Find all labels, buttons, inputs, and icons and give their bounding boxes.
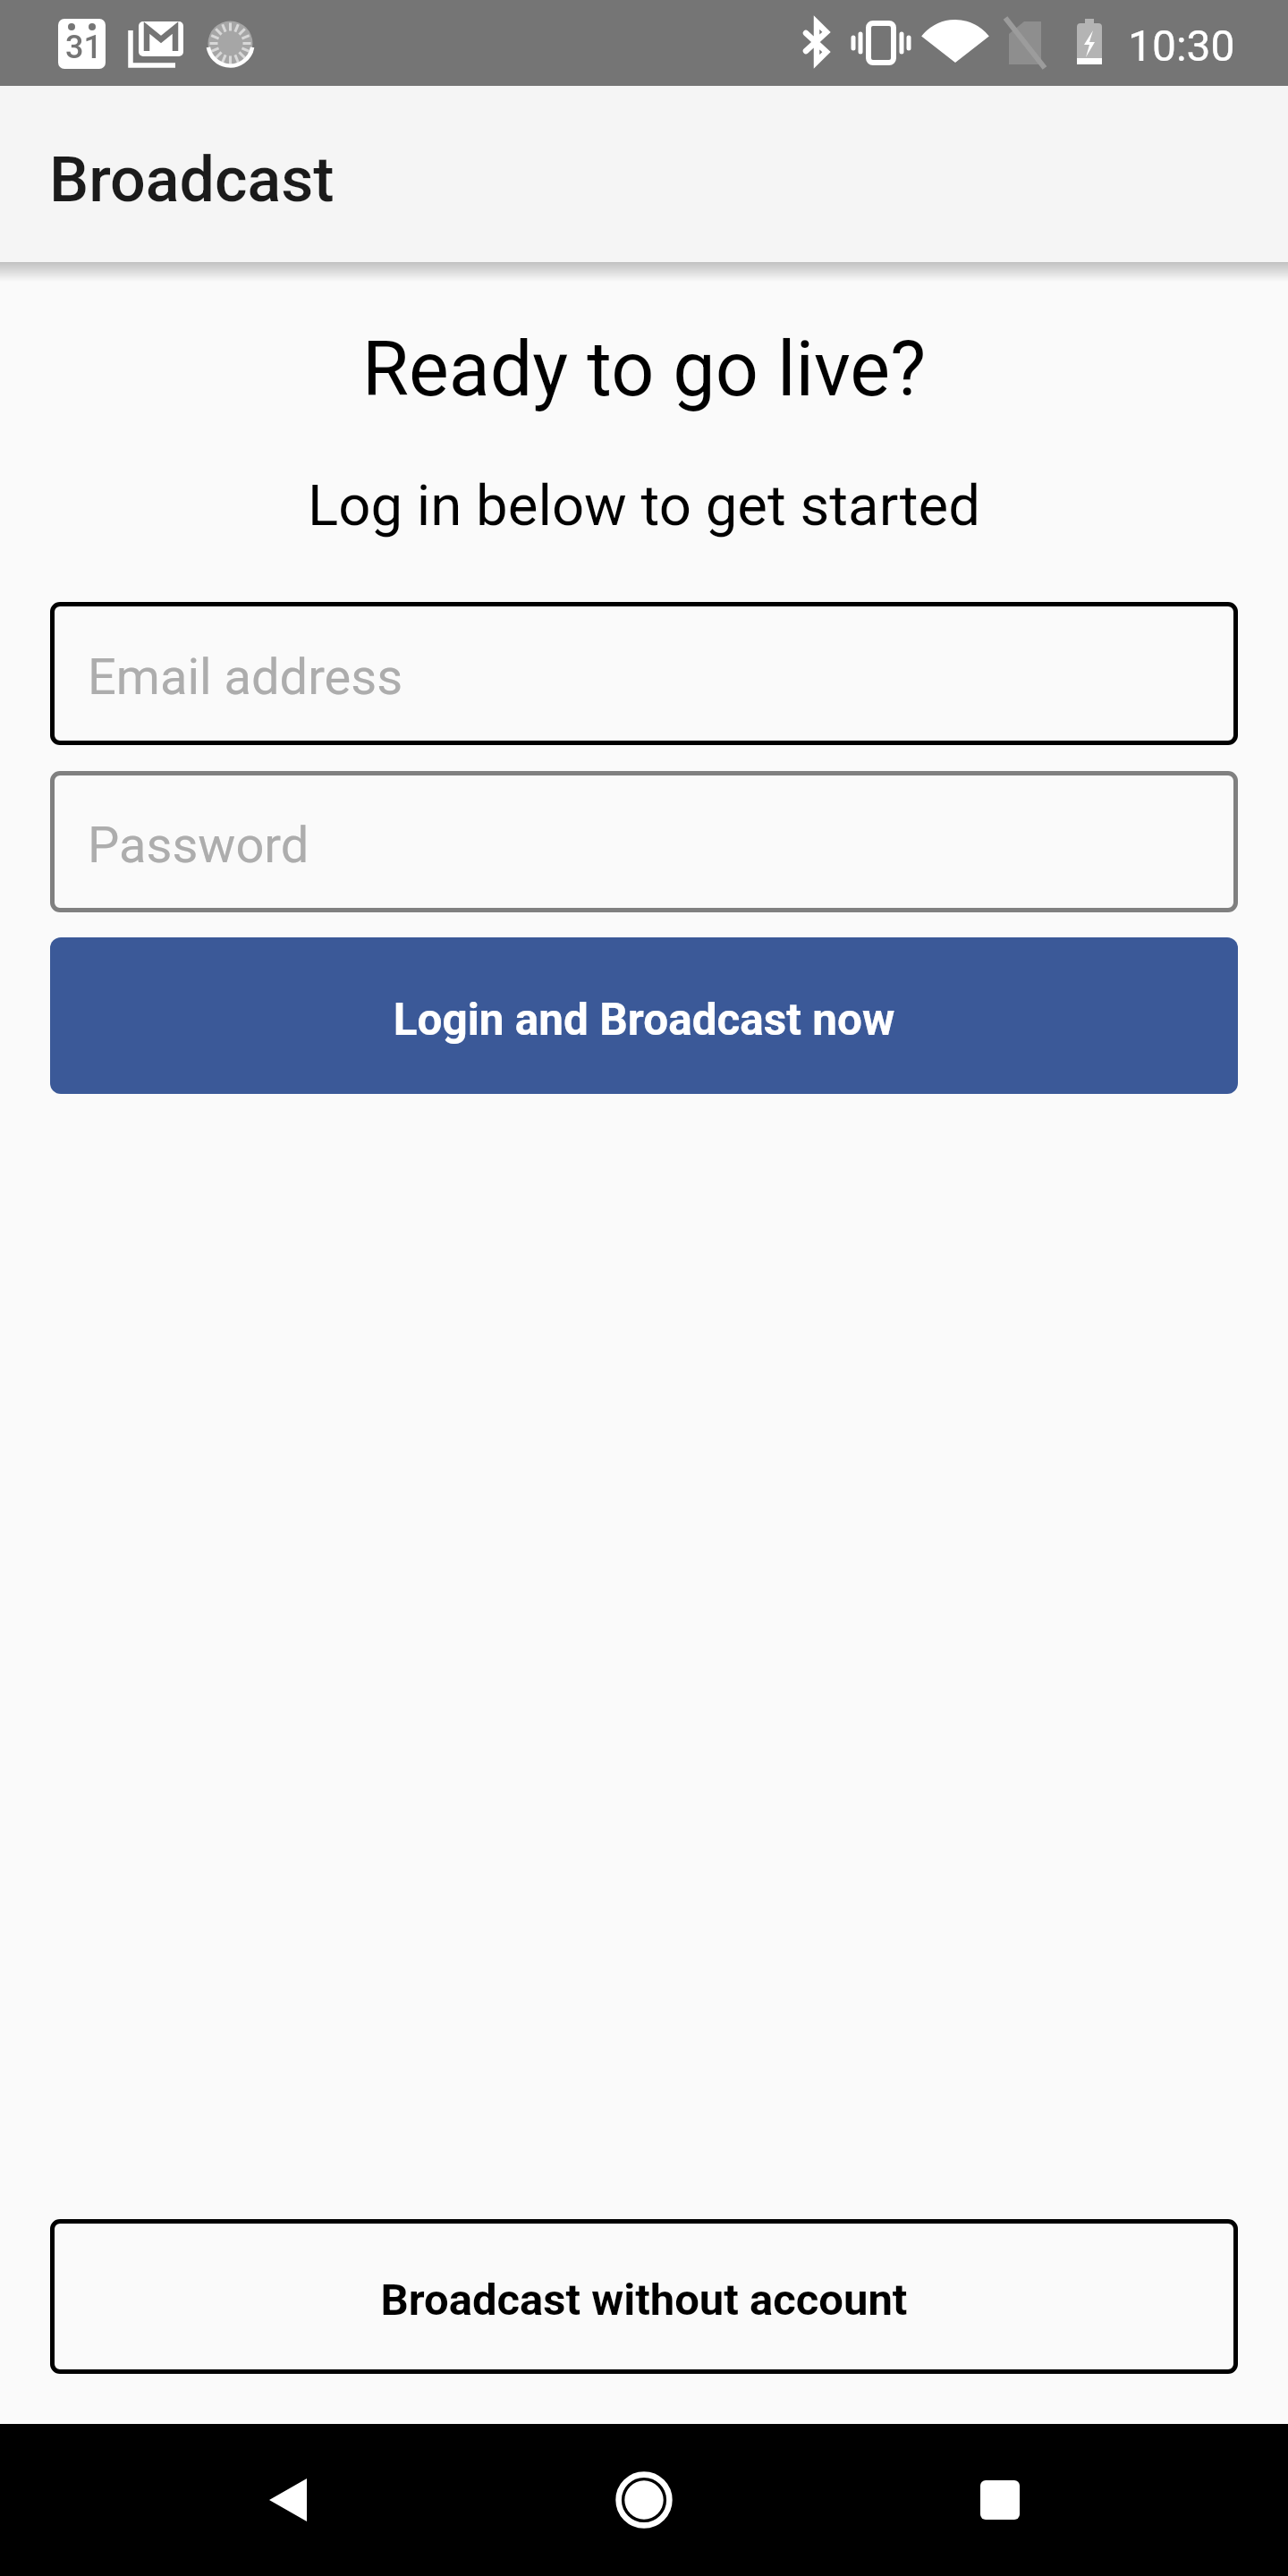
button[interactable]: Back bbox=[202, 2414, 374, 2566]
button[interactable]: Email address bbox=[50, 602, 1238, 745]
button[interactable]: Home bbox=[558, 2414, 730, 2566]
button[interactable]: Recent apps bbox=[914, 2414, 1086, 2566]
staticText: Email address bbox=[88, 648, 403, 707]
staticText: Broadcast bbox=[49, 143, 335, 216]
staticText: 31 bbox=[65, 29, 102, 66]
button[interactable]: Password bbox=[50, 771, 1238, 912]
staticText: 10:30 bbox=[1128, 21, 1235, 71]
staticText: Password bbox=[88, 816, 309, 875]
button[interactable]: Broadcast without account bbox=[50, 2219, 1238, 2374]
button[interactable]: Login and Broadcast now bbox=[50, 937, 1238, 1094]
staticText: Log in below to get started bbox=[0, 472, 1288, 538]
staticText: Login and Broadcast now bbox=[50, 994, 1238, 1046]
staticText: Ready to go live? bbox=[0, 326, 1288, 414]
staticText: Broadcast without account bbox=[50, 2275, 1238, 2326]
